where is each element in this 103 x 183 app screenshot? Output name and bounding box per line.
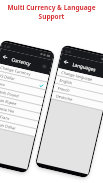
button[interactable]: Deutsche bbox=[55, 92, 102, 109]
button[interactable]: Back bbox=[2, 54, 8, 60]
button[interactable]: Change language bbox=[61, 69, 103, 86]
staticText: 9:41 bbox=[4, 44, 12, 50]
staticText: US Dollar bbox=[0, 73, 16, 81]
staticText: Multi Currency & Language Support bbox=[0, 3, 103, 21]
button[interactable]: French bbox=[57, 84, 103, 102]
button[interactable]: Canadian Dollar bbox=[0, 118, 33, 136]
staticText: Canadian Dollar bbox=[0, 119, 17, 131]
staticText: Indian Rupee bbox=[0, 96, 17, 106]
button[interactable]: More options bbox=[41, 63, 47, 69]
button[interactable]: Euro bbox=[0, 79, 42, 97]
staticText: 9:41 bbox=[65, 49, 73, 55]
staticText: Deutsche bbox=[55, 93, 73, 102]
staticText: English bbox=[59, 78, 73, 85]
staticText: French bbox=[57, 85, 71, 93]
button[interactable]: British Pound bbox=[0, 87, 41, 104]
staticText: Swiss Franc bbox=[0, 112, 11, 121]
staticText: Change language bbox=[61, 70, 93, 82]
staticText: Currency bbox=[11, 56, 32, 66]
button[interactable]: Change Currency bbox=[0, 64, 46, 81]
button[interactable]: Japanese Yen bbox=[0, 103, 37, 120]
button[interactable]: English bbox=[59, 77, 103, 94]
button[interactable]: Back bbox=[1, 49, 48, 74]
button[interactable]: Indian Rupee bbox=[0, 95, 39, 112]
staticText: Euro bbox=[0, 80, 6, 87]
staticText: Japanese Yen bbox=[0, 104, 15, 114]
staticText: Change Currency bbox=[0, 65, 31, 77]
staticText: Languages bbox=[72, 61, 97, 72]
button[interactable]: Back bbox=[63, 59, 69, 65]
button[interactable]: US Dollar bbox=[0, 72, 44, 89]
button[interactable]: Swiss Franc bbox=[0, 111, 35, 128]
staticText: British Pound bbox=[0, 88, 20, 99]
button[interactable]: Back bbox=[62, 54, 103, 79]
